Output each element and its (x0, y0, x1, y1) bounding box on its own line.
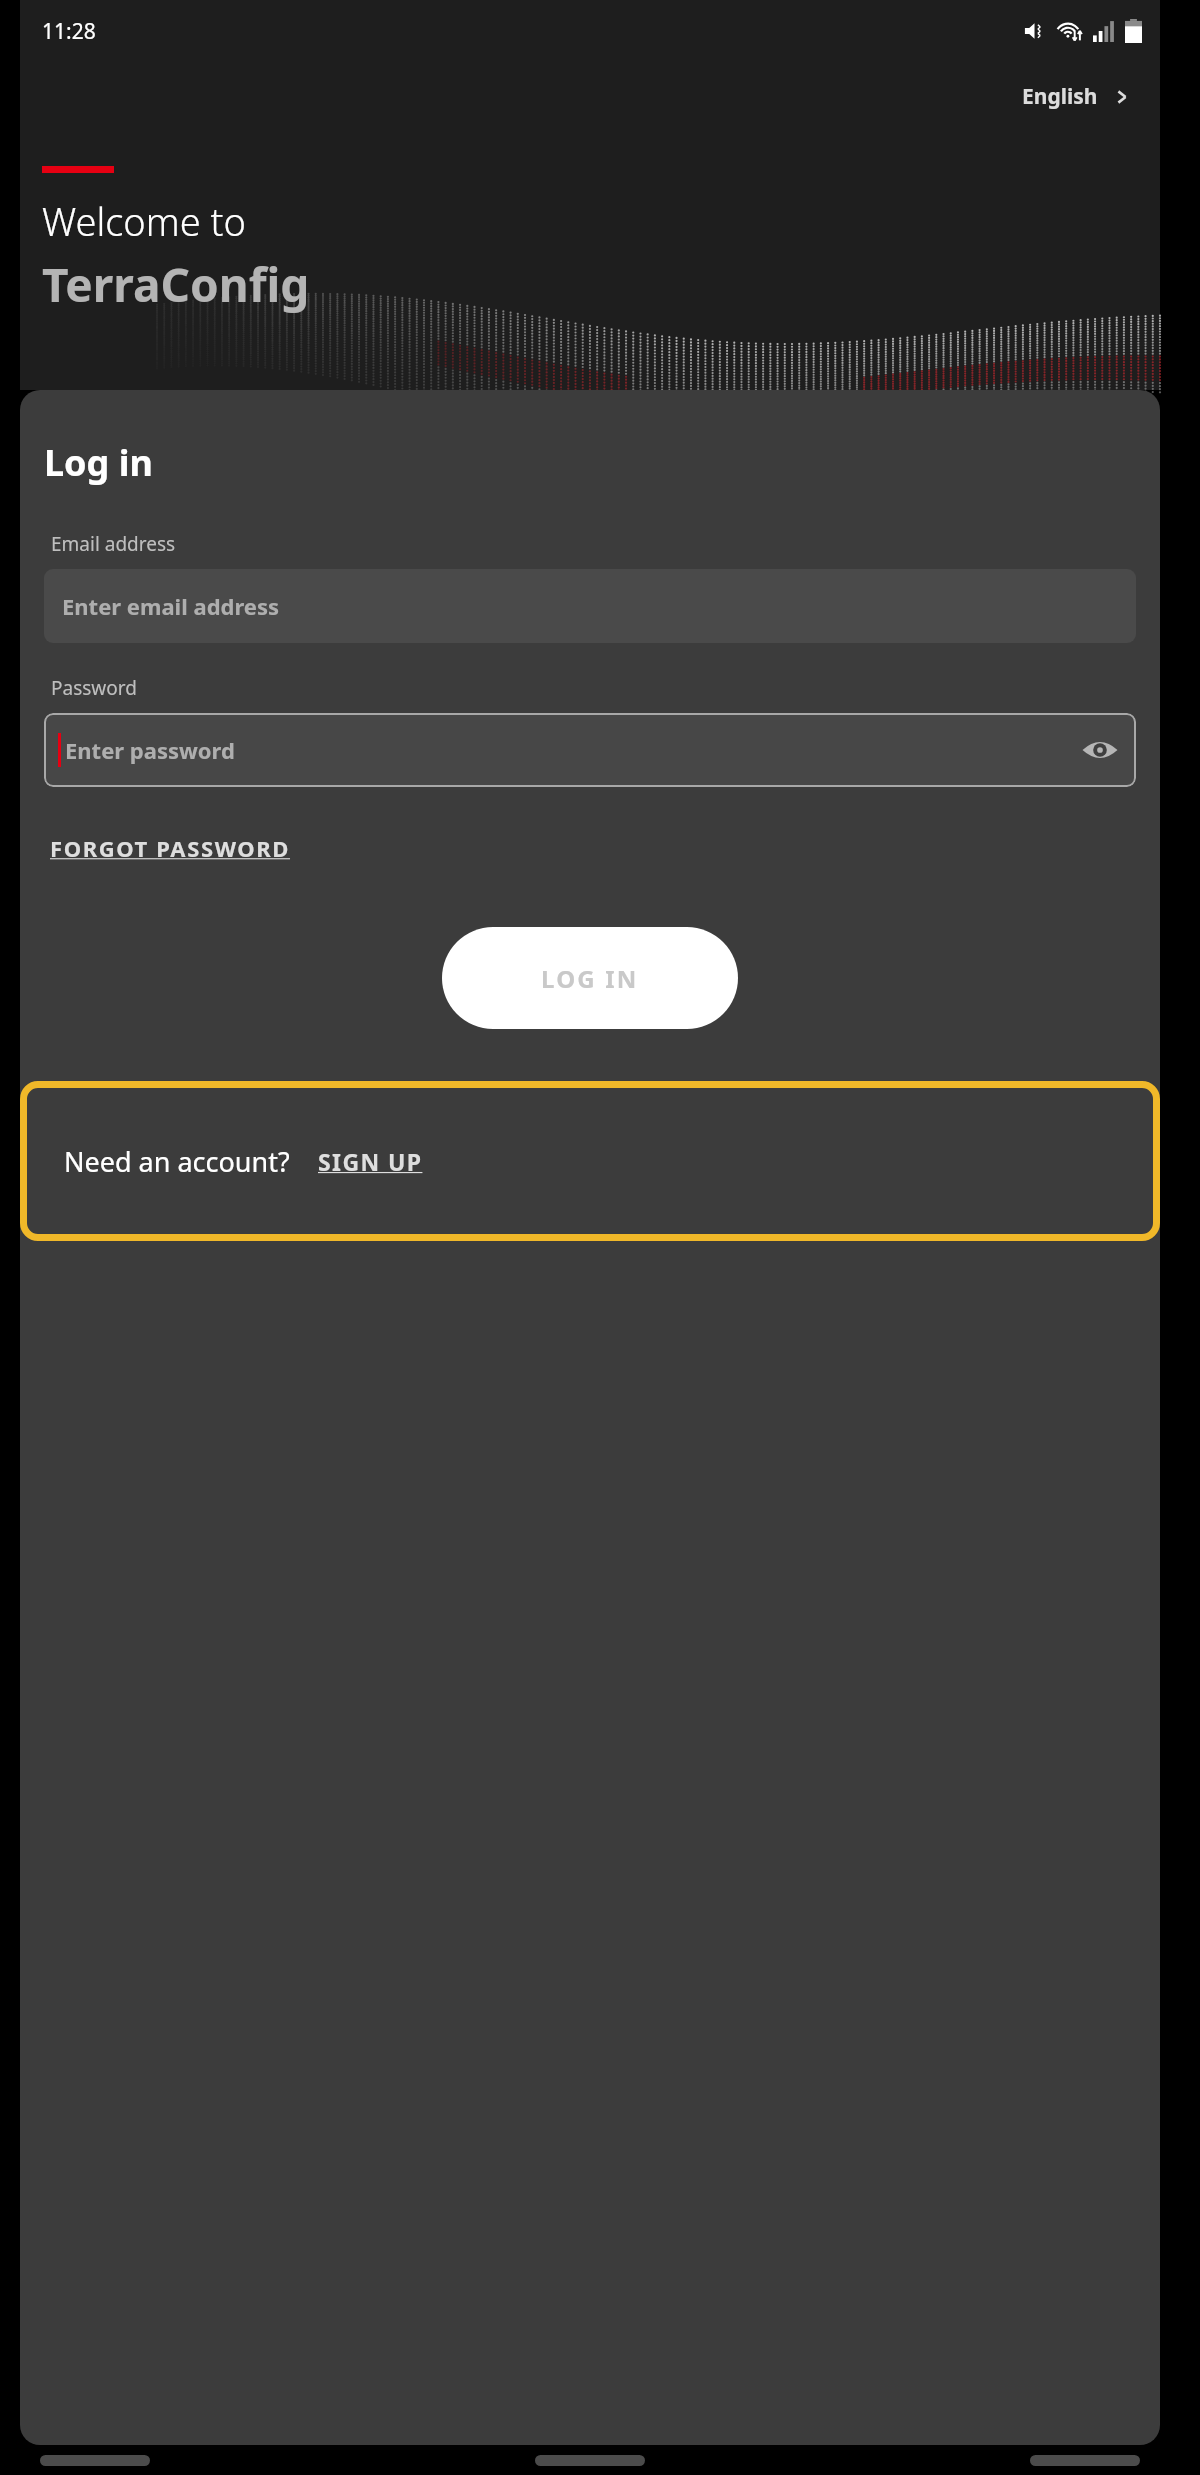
staticText: SIGN UP (318, 1146, 423, 1177)
staticText: Email address (51, 531, 176, 557)
button[interactable]: Enter email address (44, 569, 1136, 643)
staticText: Welcome to (42, 195, 246, 247)
button[interactable]: Show password (1078, 728, 1122, 772)
button[interactable]: Need an account? (20, 1081, 1160, 1241)
staticText: Password (51, 675, 137, 701)
button[interactable]: English (1014, 76, 1140, 117)
staticText: TerraConfig (42, 253, 310, 316)
staticText: FORGOT PASSWORD (50, 833, 291, 863)
button[interactable]: Enter password (44, 713, 1136, 787)
staticText: Log in (44, 438, 153, 487)
staticText: Need an account? (64, 1143, 290, 1180)
staticText: Enter email address (62, 591, 280, 621)
button[interactable]: FORGOT PASSWORD (44, 827, 297, 869)
button[interactable]: LOG IN (442, 927, 738, 1029)
staticText: English (1022, 82, 1098, 111)
staticText: 11:28 (42, 17, 96, 46)
button[interactable]: Navigation (535, 2455, 645, 2466)
button[interactable]: Navigation (1030, 2455, 1140, 2466)
button[interactable]: Navigation (40, 2455, 150, 2466)
staticText: LOG IN (541, 962, 639, 995)
staticText: Enter password (65, 735, 235, 765)
